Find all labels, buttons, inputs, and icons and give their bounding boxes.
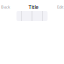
- staticText: Title: [28, 3, 38, 11]
- staticText: Edit: [57, 4, 63, 10]
- staticText: Back: [1, 4, 10, 10]
